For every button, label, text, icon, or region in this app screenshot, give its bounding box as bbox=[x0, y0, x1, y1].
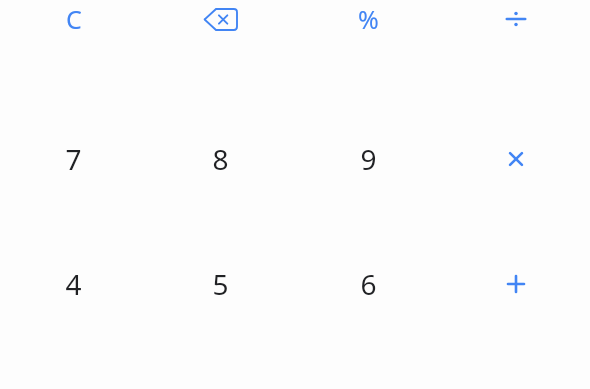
staticText: % bbox=[358, 2, 379, 36]
staticText: 5 bbox=[212, 265, 229, 303]
staticText: 6 bbox=[360, 265, 377, 303]
button[interactable]: Plus bbox=[442, 229, 590, 338]
button[interactable]: % bbox=[294, 0, 442, 89]
staticText: 9 bbox=[360, 140, 377, 178]
staticText: 8 bbox=[212, 140, 229, 178]
staticText: C bbox=[66, 2, 82, 36]
staticText: 4 bbox=[65, 265, 82, 303]
button[interactable]: 5 bbox=[147, 229, 294, 338]
button[interactable]: 7 bbox=[0, 89, 147, 229]
button[interactable]: 8 bbox=[147, 89, 294, 229]
staticText: 7 bbox=[65, 140, 82, 178]
button[interactable]: 4 bbox=[0, 229, 147, 338]
button[interactable]: 6 bbox=[294, 229, 442, 338]
button[interactable]: Backspace bbox=[147, 0, 294, 89]
button[interactable]: 9 bbox=[294, 89, 442, 229]
button[interactable]: Divide bbox=[442, 0, 590, 89]
button[interactable]: C bbox=[0, 0, 147, 89]
button[interactable]: Multiply bbox=[442, 89, 590, 229]
